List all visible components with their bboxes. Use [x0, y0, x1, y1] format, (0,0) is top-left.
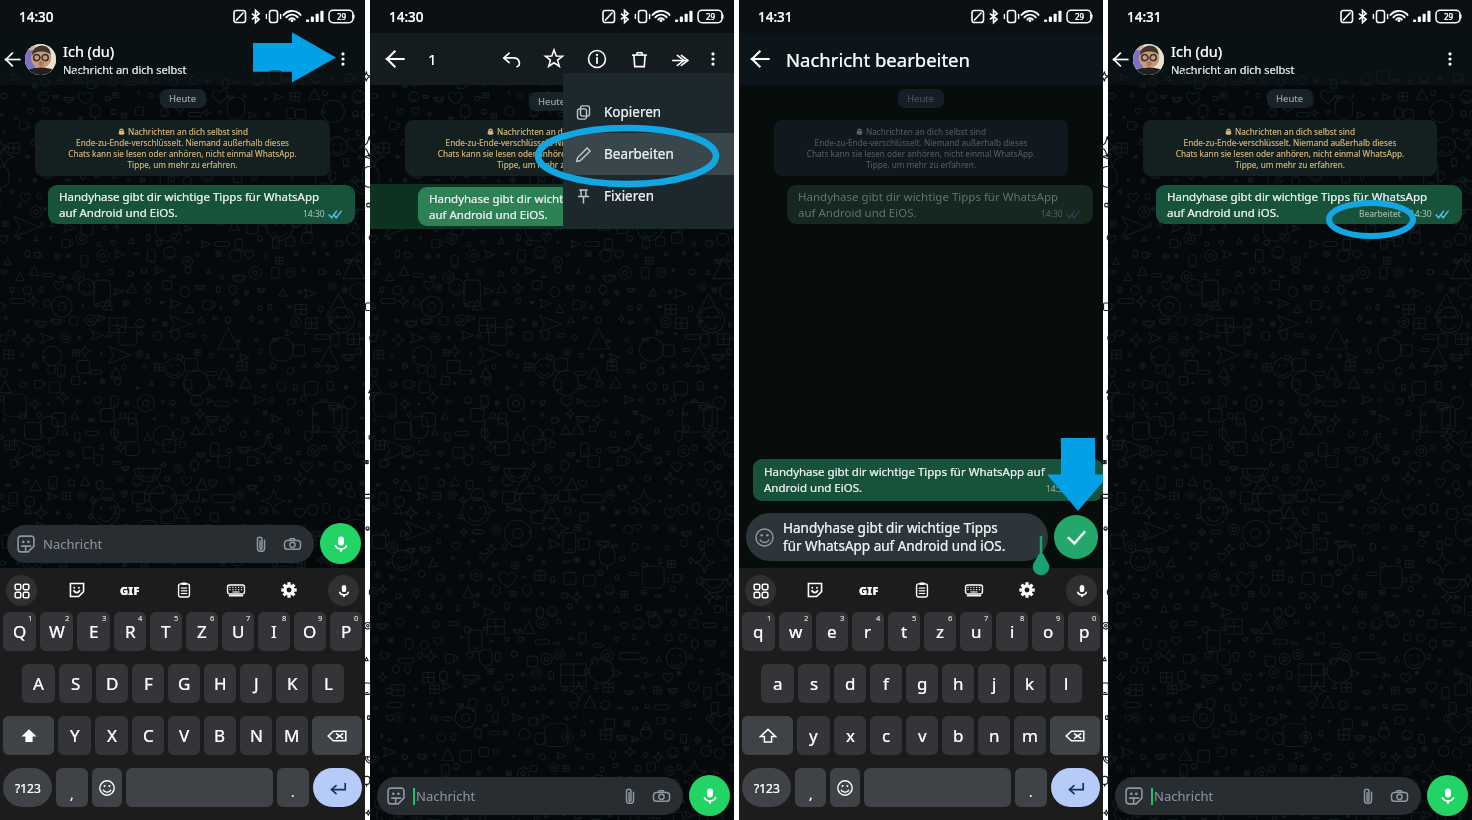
button[interactable]: y	[797, 716, 830, 755]
button[interactable]: g	[906, 664, 938, 703]
button[interactable]: Eingabetaste	[1051, 768, 1100, 807]
button[interactable]: Kopieren	[563, 91, 927, 133]
button[interactable]: Bearbeiten	[563, 133, 927, 175]
button[interactable]: 0	[1068, 612, 1100, 651]
button[interactable]: ?123	[3, 768, 52, 807]
button[interactable]: 7	[222, 612, 254, 651]
button[interactable]: Handyhase gibt dir wichtige Tipps für Wh…	[418, 187, 724, 226]
button[interactable]: 9	[294, 612, 326, 651]
button[interactable]: C	[132, 716, 164, 755]
button[interactable]: Antworten	[497, 44, 527, 74]
button[interactable]: Nachricht	[387, 777, 670, 815]
button[interactable]: Mehr Optionen	[329, 45, 357, 73]
button[interactable]: j	[978, 664, 1010, 703]
button[interactable]: X	[95, 716, 128, 755]
button[interactable]: Eingabetaste	[313, 768, 362, 807]
button[interactable]: c	[870, 716, 902, 755]
button[interactable]: D	[96, 664, 128, 703]
button[interactable]: 4	[852, 612, 884, 651]
button[interactable]: Y	[58, 716, 91, 755]
button[interactable]: Ich (du)	[63, 41, 329, 77]
button[interactable]: ,	[795, 768, 826, 807]
button[interactable]: Heute	[169, 92, 197, 105]
button[interactable]: s	[798, 664, 830, 703]
button[interactable]: Tastatur wechseln	[961, 577, 987, 603]
button[interactable]: .	[1015, 768, 1047, 807]
button[interactable]: Handyhase gibt dir wichtige Tipps für Wh…	[753, 459, 1103, 501]
button[interactable]: Spracheingabe	[1066, 575, 1097, 606]
button[interactable]: H	[204, 664, 236, 703]
button[interactable]: 5	[888, 612, 920, 651]
button[interactable]: a	[761, 664, 794, 703]
button[interactable]: Sticker	[64, 577, 90, 603]
button[interactable]: Spracheingabe	[328, 575, 359, 606]
button[interactable]: 6	[924, 612, 956, 651]
button[interactable]: Einstellungen	[276, 577, 302, 603]
button[interactable]: k	[1014, 664, 1046, 703]
button[interactable]: Umschalttaste	[3, 716, 54, 755]
button[interactable]: Nachrichten an dich selbst sind	[1149, 126, 1431, 170]
button[interactable]: B	[204, 716, 236, 755]
button[interactable]: Tastatur wechseln	[223, 577, 249, 603]
button[interactable]: ,	[56, 768, 88, 807]
button[interactable]: Nachrichten an dich selbst sind	[780, 126, 1062, 170]
button[interactable]: d	[834, 664, 866, 703]
button[interactable]: Heute	[538, 95, 566, 108]
button[interactable]: Zurück	[380, 44, 410, 74]
button[interactable]: Apps	[745, 575, 776, 606]
button[interactable]: f	[870, 664, 902, 703]
button[interactable]: 2	[40, 612, 73, 651]
button[interactable]: Zurück	[0, 47, 24, 71]
button[interactable]: Löschen	[1050, 716, 1100, 755]
button[interactable]: 2	[779, 612, 812, 651]
button[interactable]: Weiterleiten	[666, 44, 696, 74]
button[interactable]: Sprachnachricht	[689, 775, 730, 816]
button[interactable]: Mehr Optionen	[700, 46, 726, 72]
button[interactable]: Fertig	[1054, 515, 1098, 559]
button[interactable]: Emoji	[92, 768, 122, 807]
button[interactable]: GIF	[855, 576, 883, 604]
button[interactable]: v	[906, 716, 938, 755]
button[interactable]: x	[834, 716, 866, 755]
button[interactable]: M	[276, 716, 308, 755]
button[interactable]: S	[59, 664, 92, 703]
button[interactable]: Nachrichten an dich selbst sind	[41, 126, 324, 170]
button[interactable]: Zwischenablage	[909, 577, 935, 603]
button[interactable]: L	[312, 664, 344, 703]
button[interactable]: h	[942, 664, 974, 703]
button[interactable]: 3	[816, 612, 848, 651]
button[interactable]: Zurück	[1108, 47, 1132, 71]
button[interactable]: V	[168, 716, 200, 755]
button[interactable]: Ich (du)	[1171, 41, 1436, 77]
button[interactable]: J	[240, 664, 272, 703]
button[interactable]: l	[1050, 664, 1082, 703]
button[interactable]: K	[276, 664, 308, 703]
button[interactable]: 1	[742, 612, 775, 651]
button[interactable]: 8	[258, 612, 290, 651]
button[interactable]: 7	[960, 612, 992, 651]
button[interactable]: Handyhase gibt dir wichtige Tipps für Wh…	[755, 513, 1042, 561]
button[interactable]: GIF	[116, 576, 144, 604]
button[interactable]: Sticker	[802, 577, 828, 603]
button[interactable]: Mit Stern markieren	[539, 44, 569, 74]
button[interactable]: 5	[150, 612, 182, 651]
button[interactable]: 4	[114, 612, 146, 651]
button[interactable]: Apps	[6, 575, 37, 606]
button[interactable]	[1133, 44, 1164, 75]
button[interactable]: Heute	[907, 92, 935, 105]
button[interactable]: A	[22, 664, 55, 703]
button[interactable]: 9	[1032, 612, 1064, 651]
button[interactable]: Sprachnachricht	[1427, 775, 1468, 816]
button[interactable]: ?123	[742, 768, 791, 807]
button[interactable]: F	[132, 664, 164, 703]
button[interactable]: Nachricht	[17, 525, 301, 563]
button[interactable]: N	[240, 716, 272, 755]
button[interactable]: Fixieren	[563, 175, 927, 217]
button[interactable]: Nachrichten an dich selbst sind	[411, 126, 693, 170]
button[interactable]: b	[942, 716, 974, 755]
button[interactable]: G	[168, 664, 200, 703]
button[interactable]: Handyhase gibt dir wichtige Tipps für Wh…	[48, 185, 355, 224]
button[interactable]: Nachricht	[1125, 777, 1408, 815]
